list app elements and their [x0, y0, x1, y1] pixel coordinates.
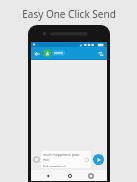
button[interactable]: much happiness pour	[41, 151, 91, 168]
button[interactable]: Send	[93, 154, 104, 165]
button[interactable]	[42, 49, 65, 57]
staticText: Easy One Click Send	[22, 7, 116, 21]
staticText: moi	[43, 157, 50, 162]
button[interactable]: Keyboard	[33, 156, 40, 163]
button[interactable]: Back	[42, 170, 53, 181]
staticText: Eid greetings!	[43, 164, 67, 167]
button[interactable]: Attach	[95, 48, 106, 59]
button[interactable]: Recent apps	[85, 170, 96, 181]
button[interactable]: Back	[31, 48, 42, 59]
button[interactable]: Home	[64, 170, 75, 181]
staticText: much happiness pour	[43, 152, 80, 157]
